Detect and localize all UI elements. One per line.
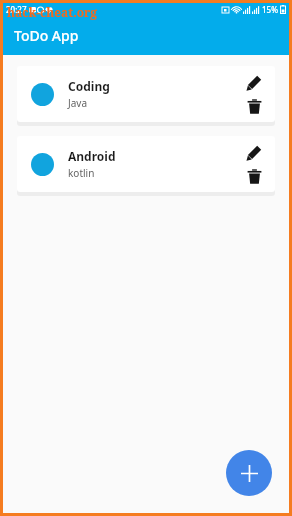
staticText: kotlin bbox=[68, 166, 95, 180]
button[interactable]: Delete bbox=[243, 95, 265, 117]
staticText: hack-cheat.org bbox=[7, 4, 98, 20]
button[interactable]: Delete bbox=[243, 165, 265, 187]
staticText: 20:27 bbox=[6, 4, 27, 15]
staticText: ToDo App bbox=[14, 26, 79, 45]
button[interactable]: Android bbox=[17, 136, 275, 192]
button[interactable]: Edit bbox=[243, 142, 265, 164]
staticText: Java bbox=[68, 96, 88, 110]
staticText: Android bbox=[68, 148, 116, 164]
staticText: 15% bbox=[262, 4, 278, 15]
button[interactable]: Edit bbox=[243, 72, 265, 94]
button[interactable]: Add task bbox=[226, 450, 272, 496]
button[interactable]: Coding bbox=[17, 66, 275, 122]
staticText: Coding bbox=[68, 78, 110, 94]
